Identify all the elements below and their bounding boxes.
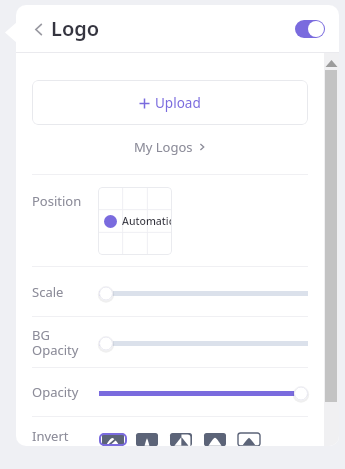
button[interactable]: Scroll [324,53,339,446]
button[interactable] [99,382,308,402]
staticText: Logo [51,15,100,42]
button[interactable]: Upload [32,80,308,125]
button[interactable] [99,282,308,302]
button[interactable]: Toggle logo [295,20,325,38]
button[interactable]: Invert option 4 [201,433,229,446]
staticText: Scale [32,283,64,301]
button[interactable]: Automatic [98,187,172,255]
staticText: Automatic [122,214,172,228]
staticText: Upload [155,94,201,112]
staticText: BG Opacity [32,326,79,359]
staticText: Invert [32,427,69,445]
button[interactable]: Invert option 2 [133,433,161,446]
button[interactable]: Invert option 3 [167,433,195,446]
staticText: Opacity [32,383,79,401]
staticText: Position [32,192,82,210]
button[interactable]: Back [27,18,49,40]
button[interactable]: Invert option 1 [99,433,127,446]
button[interactable]: My Logos [32,136,308,158]
staticText: My Logos [134,138,193,156]
button[interactable] [99,332,308,352]
button[interactable]: Invert option 5 [235,433,263,446]
